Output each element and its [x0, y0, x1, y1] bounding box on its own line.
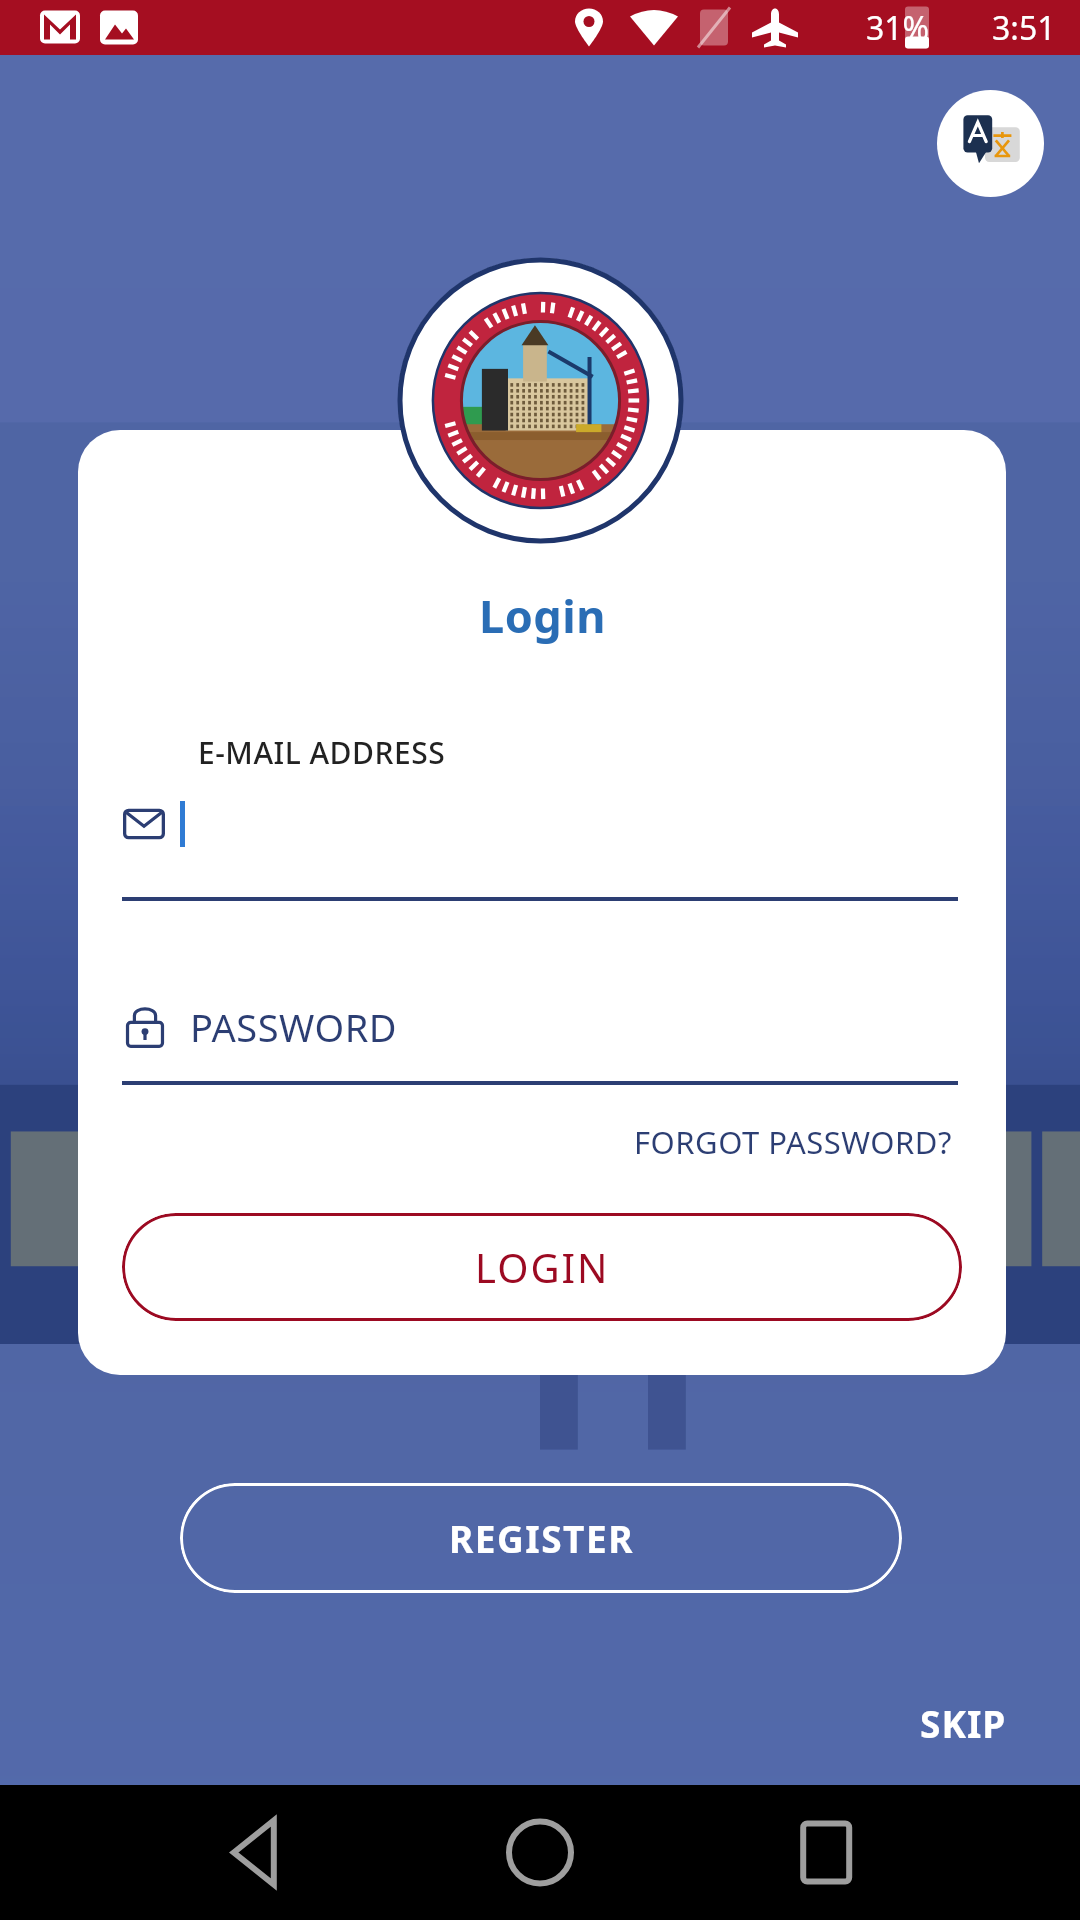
staticText: REGISTER [449, 1513, 634, 1563]
button[interactable]: FORGOT PASSWORD? [628, 1115, 958, 1169]
staticText: 31% [866, 6, 930, 50]
staticText: Login [479, 585, 606, 646]
button[interactable] [122, 789, 958, 859]
staticText: PASSWORD [190, 1001, 398, 1053]
button[interactable]: Translate [937, 90, 1044, 197]
staticText: SKIP [920, 1698, 1007, 1748]
staticText: LOGIN [475, 1240, 610, 1294]
staticText: 3:51 [992, 6, 1056, 50]
button[interactable]: LOGIN [122, 1213, 962, 1321]
button[interactable]: SKIP [910, 1690, 1017, 1756]
staticText: E-MAIL ADDRESS [198, 732, 446, 773]
button[interactable]: REGISTER [180, 1483, 902, 1593]
staticText: FORGOT PASSWORD? [634, 1121, 952, 1163]
button[interactable]: PASSWORD [122, 989, 958, 1065]
